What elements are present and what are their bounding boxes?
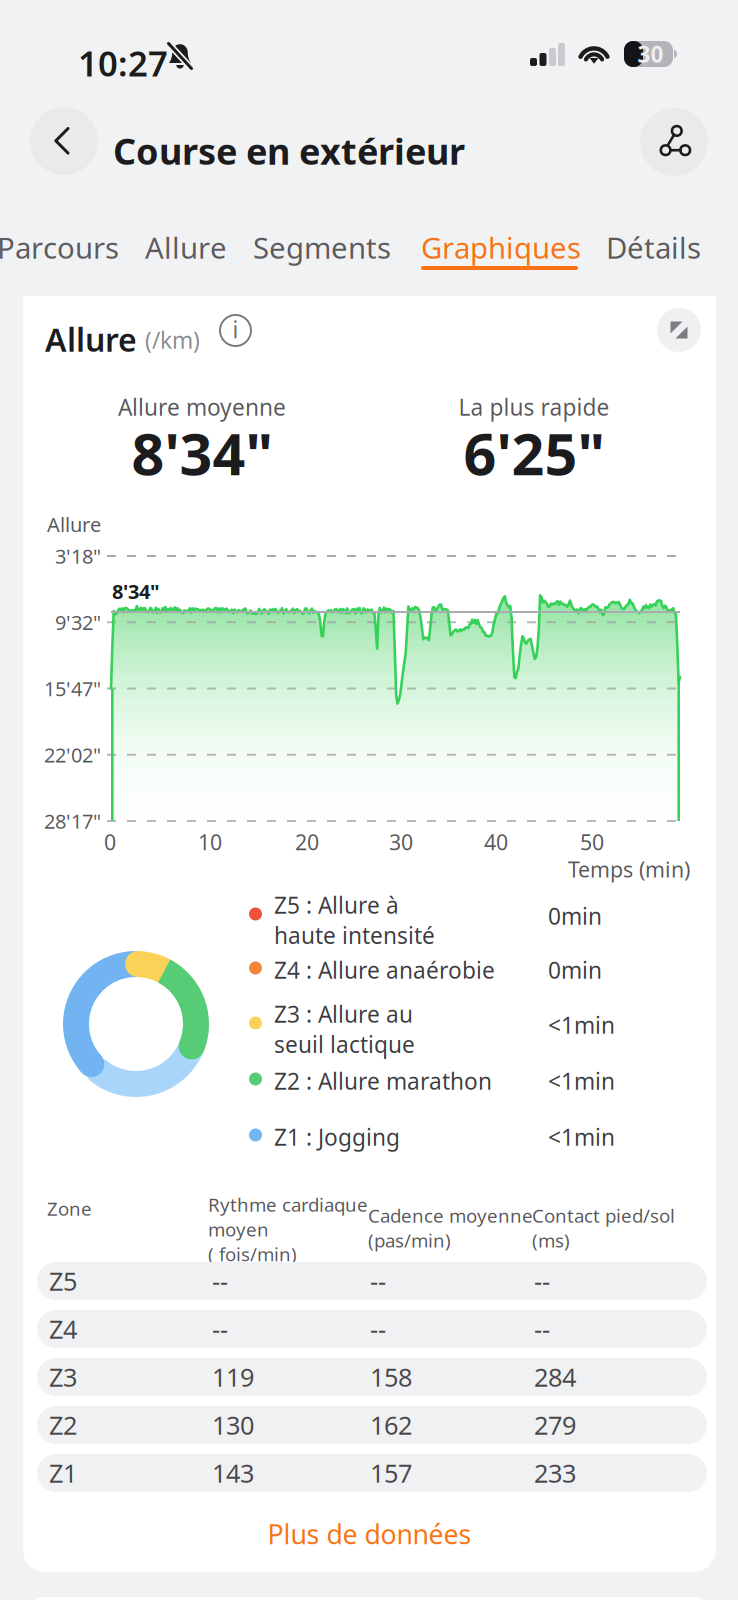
staticText: 0min — [548, 901, 602, 931]
staticText: 279 — [534, 1408, 576, 1442]
button[interactable]: Plus de données — [23, 1496, 716, 1572]
staticText: Allure moyenne — [118, 392, 286, 422]
staticText: 0min — [548, 955, 602, 985]
staticText: 158 — [370, 1360, 412, 1394]
staticText: Parcours — [0, 228, 119, 267]
staticText: Z4 : Allure anaérobie — [274, 955, 495, 985]
staticText: <1min — [548, 1122, 615, 1152]
staticText: Cadence moyenne (pas/min) — [368, 1203, 533, 1253]
staticText: 0 — [104, 828, 116, 856]
staticText: -- — [534, 1312, 550, 1346]
staticText: i — [232, 314, 238, 344]
staticText: Z1 — [49, 1456, 77, 1490]
staticText: 119 — [212, 1360, 254, 1394]
staticText: Allure — [47, 511, 101, 538]
staticText: 6'25" — [463, 415, 604, 491]
staticText: 162 — [370, 1408, 412, 1442]
button[interactable]: Back — [30, 107, 98, 175]
button[interactable]: Parcours — [0, 228, 167, 272]
staticText: 50 — [580, 828, 604, 856]
staticText: Z5 : Allure à haute intensité — [274, 890, 435, 950]
staticText: Contact pied/sol (ms) — [532, 1203, 675, 1253]
staticText: Z1 : Jogging — [274, 1122, 400, 1152]
staticText: 8'34" — [131, 415, 272, 491]
staticText: 10 — [198, 828, 222, 856]
button[interactable]: Détails — [606, 228, 738, 272]
staticText: Z2 — [49, 1408, 77, 1442]
staticText: <1min — [548, 1010, 615, 1040]
staticText: 15'47" — [44, 675, 101, 702]
staticText: (/km) — [145, 325, 200, 355]
staticText: Rythme cardiaque moyen ( fois/min) — [208, 1192, 368, 1266]
staticText: -- — [212, 1312, 228, 1346]
staticText: 30 — [637, 39, 663, 69]
staticText: 10:27 — [78, 40, 168, 86]
staticText: 143 — [212, 1456, 254, 1490]
staticText: 8'34" — [112, 578, 160, 605]
staticText: Z4 — [49, 1312, 77, 1346]
staticText: Allure — [45, 318, 137, 360]
staticText: Temps (min) — [568, 855, 690, 883]
staticText: Z5 — [49, 1264, 77, 1298]
button[interactable]: Segments — [253, 228, 423, 272]
staticText: 28'17" — [44, 808, 101, 834]
staticText: -- — [212, 1264, 228, 1298]
staticText: Graphiques — [421, 228, 581, 267]
staticText: 20 — [295, 828, 319, 856]
staticText: -- — [534, 1264, 550, 1298]
staticText: <1min — [548, 1066, 615, 1096]
button[interactable]: Expand chart — [657, 308, 701, 352]
staticText: 157 — [370, 1456, 412, 1490]
staticText: Segments — [253, 228, 391, 267]
staticText: Zone — [47, 1196, 92, 1221]
button[interactable]: Share — [640, 108, 708, 176]
staticText: 9'32" — [55, 609, 101, 636]
button[interactable]: Graphiques — [421, 228, 591, 272]
staticText: Allure — [145, 228, 227, 267]
staticText: Plus de données — [267, 1516, 471, 1552]
staticText: 130 — [212, 1408, 254, 1442]
staticText: Course en extérieur — [113, 127, 465, 175]
staticText: 284 — [534, 1360, 576, 1394]
staticText: La plus rapide — [458, 392, 609, 422]
staticText: Z2 : Allure marathon — [274, 1066, 492, 1096]
staticText: 3'18" — [55, 543, 101, 569]
staticText: -- — [370, 1312, 386, 1346]
staticText: -- — [370, 1264, 386, 1298]
staticText: Z3 : Allure au seuil lactique — [274, 999, 415, 1059]
button[interactable]: Allure — [145, 228, 315, 272]
staticText: 40 — [484, 828, 508, 856]
staticText: 233 — [534, 1456, 576, 1490]
staticText: Détails — [606, 228, 701, 267]
staticText: Z3 — [49, 1360, 77, 1394]
staticText: 22'02" — [44, 741, 101, 768]
staticText: 30 — [389, 828, 413, 856]
